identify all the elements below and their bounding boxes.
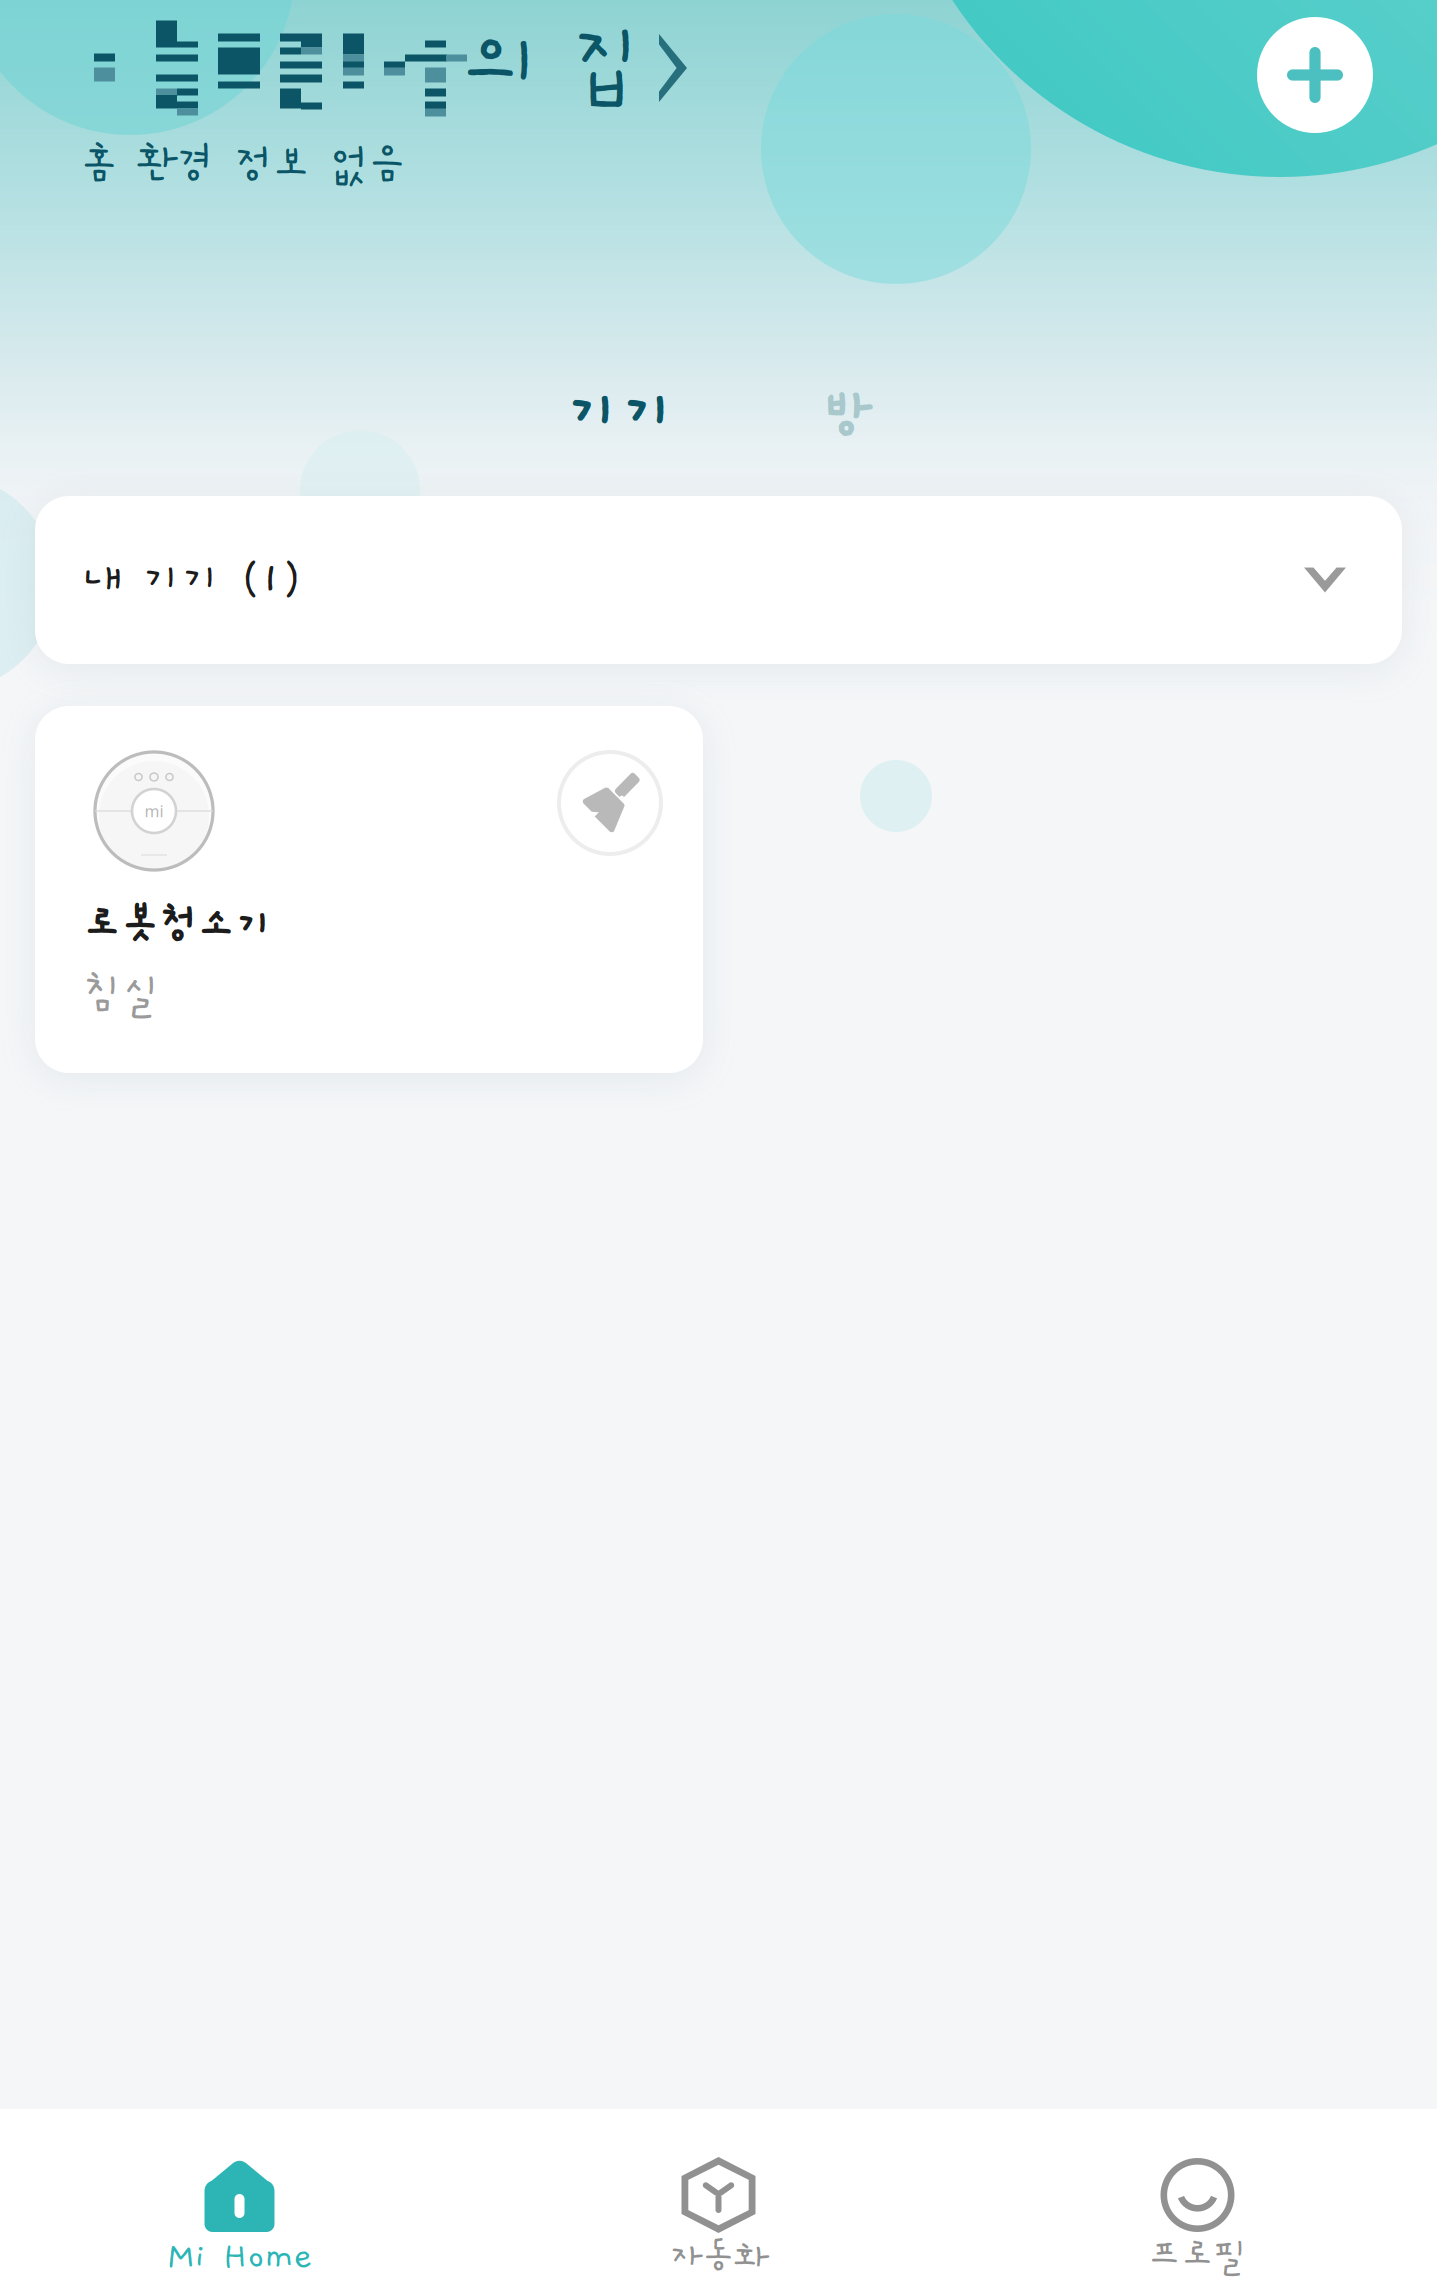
staticText: mi xyxy=(144,800,163,822)
staticText: 로봇청소기 xyxy=(83,902,273,949)
staticText: 자동화 xyxy=(669,2237,768,2277)
button[interactable]: 자동화 xyxy=(479,2109,958,2277)
button[interactable]: 기기 xyxy=(566,380,676,447)
staticText: 침실 xyxy=(83,971,161,1019)
button[interactable]: Mi Home xyxy=(0,2109,479,2277)
staticText: 기기 xyxy=(566,380,676,447)
staticText: 집 xyxy=(571,19,643,107)
button[interactable]: 내 기기 (1) xyxy=(35,496,1402,664)
staticText: Mi Home xyxy=(166,2236,312,2276)
staticText: 방 xyxy=(822,386,871,446)
button[interactable]: 의 xyxy=(94,5,714,125)
button[interactable]: mi xyxy=(35,706,703,1073)
staticText: 프로필 xyxy=(1148,2236,1247,2276)
staticText: 의 xyxy=(467,19,539,107)
button[interactable]: Add device xyxy=(1257,17,1373,133)
staticText: 홈 환경 정보 없음 xyxy=(80,142,406,189)
button[interactable]: 프로필 xyxy=(958,2109,1437,2277)
button[interactable]: 방 xyxy=(822,386,871,446)
staticText: 내 기기 (1) xyxy=(83,556,302,604)
